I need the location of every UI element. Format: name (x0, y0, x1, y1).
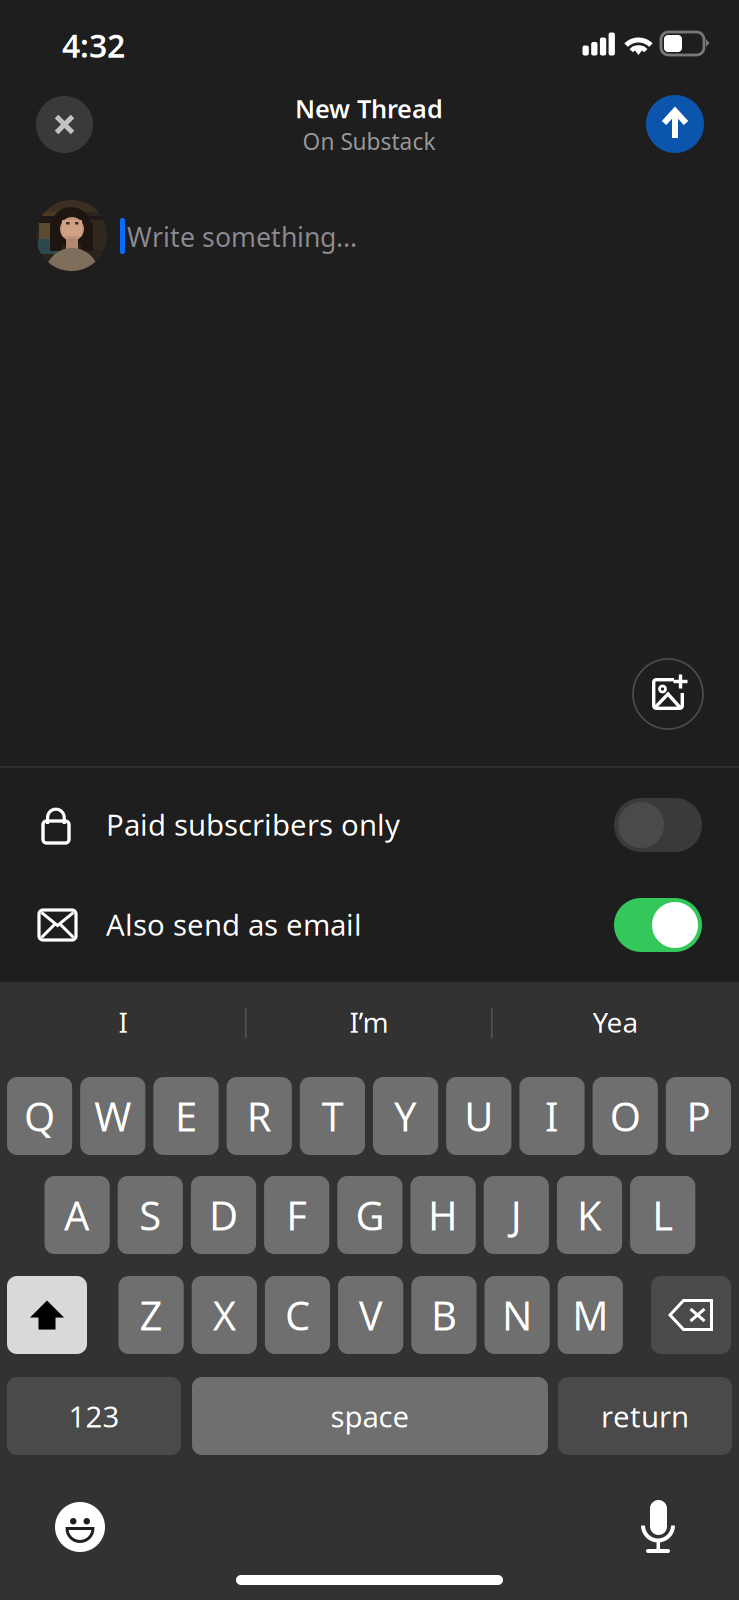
staticText: Also send as email (106, 905, 362, 944)
staticText: N (502, 1288, 532, 1341)
staticText: Yea (592, 1003, 638, 1041)
button[interactable]: Close (36, 96, 93, 153)
staticText: space (330, 1396, 409, 1435)
button[interactable]: J (484, 1176, 549, 1254)
staticText: E (175, 1089, 197, 1142)
button[interactable]: I (0, 1000, 246, 1044)
button[interactable]: K (557, 1176, 622, 1254)
staticText: 4:32 (62, 24, 125, 66)
staticText: R (247, 1089, 272, 1142)
staticText: X (213, 1288, 236, 1341)
staticText: K (577, 1188, 602, 1241)
staticText: S (139, 1188, 161, 1241)
button[interactable]: Emoji (55, 1502, 105, 1552)
button[interactable]: R (227, 1077, 292, 1155)
button[interactable]: Y (373, 1077, 438, 1155)
button[interactable]: Also send as email (0, 875, 739, 975)
staticText: U (464, 1089, 493, 1142)
staticText: New Thread (295, 92, 443, 125)
button[interactable]: Dictation (641, 1500, 675, 1553)
staticText: L (652, 1188, 673, 1241)
staticText: V (359, 1288, 383, 1341)
staticText: Write something... (127, 219, 357, 254)
button[interactable]: Yea (492, 1000, 739, 1044)
staticText: Paid subscribers only (106, 805, 400, 844)
staticText: A (64, 1188, 90, 1241)
staticText: T (321, 1089, 343, 1142)
staticText: Y (394, 1089, 417, 1142)
staticText: return (601, 1396, 689, 1435)
button[interactable]: T (300, 1077, 365, 1155)
button[interactable]: E (153, 1077, 219, 1155)
button[interactable]: return (558, 1377, 732, 1455)
staticText: G (355, 1188, 384, 1241)
staticText: M (572, 1288, 608, 1341)
button[interactable]: U (446, 1077, 511, 1155)
staticText: O (610, 1089, 641, 1142)
button[interactable]: L (630, 1176, 695, 1254)
button[interactable]: N (484, 1276, 550, 1354)
button[interactable]: C (265, 1276, 330, 1354)
staticText: C (285, 1288, 310, 1341)
staticText: H (428, 1188, 458, 1241)
button[interactable]: P (666, 1077, 731, 1155)
button[interactable]: M (558, 1276, 623, 1354)
staticText: F (286, 1188, 307, 1241)
button[interactable]: A (44, 1176, 110, 1254)
staticText: B (431, 1288, 457, 1341)
button[interactable]: G (337, 1176, 402, 1254)
button[interactable]: Paid subscribers only (0, 775, 739, 875)
button[interactable]: space (192, 1377, 548, 1455)
staticText: Q (24, 1089, 55, 1142)
staticText: On Substack (302, 126, 435, 156)
button[interactable]: Post (646, 95, 704, 153)
button[interactable]: H (410, 1176, 476, 1254)
button[interactable]: I’m (246, 1000, 492, 1044)
staticText: W (94, 1089, 131, 1142)
button[interactable]: D (191, 1176, 256, 1254)
button[interactable]: O (593, 1077, 658, 1155)
button[interactable]: Add photo (633, 659, 703, 729)
button[interactable]: V (338, 1276, 403, 1354)
button[interactable]: I (519, 1077, 585, 1155)
button[interactable]: Shift (7, 1276, 87, 1354)
staticText: P (686, 1089, 710, 1142)
button[interactable]: Delete (651, 1276, 731, 1354)
button[interactable]: 123 (7, 1377, 181, 1455)
staticText: D (209, 1188, 238, 1241)
staticText: Z (140, 1288, 163, 1341)
staticText: I’m (349, 1003, 388, 1041)
button[interactable]: F (264, 1176, 329, 1254)
staticText: I (118, 1003, 127, 1041)
button[interactable]: W (80, 1077, 145, 1155)
staticText: I (545, 1089, 559, 1142)
button[interactable]: X (192, 1276, 257, 1354)
button[interactable]: S (118, 1176, 183, 1254)
button[interactable]: B (411, 1276, 476, 1354)
staticText: J (511, 1188, 522, 1241)
staticText: 123 (68, 1396, 119, 1435)
button[interactable]: Z (118, 1276, 184, 1354)
button[interactable]: Q (7, 1077, 72, 1155)
